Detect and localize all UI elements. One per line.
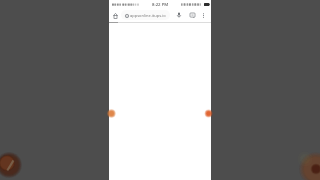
button[interactable]: More options <box>197 9 209 21</box>
button[interactable]: Switch tabs <box>187 9 197 21</box>
button[interactable]: Voice search <box>170 9 187 21</box>
staticText: appsonline.itups.io <box>130 13 166 18</box>
staticText: 8:22 PM <box>152 1 169 7</box>
button[interactable]: appsonline.itups.io <box>121 10 170 20</box>
button[interactable]: Home <box>110 10 121 21</box>
